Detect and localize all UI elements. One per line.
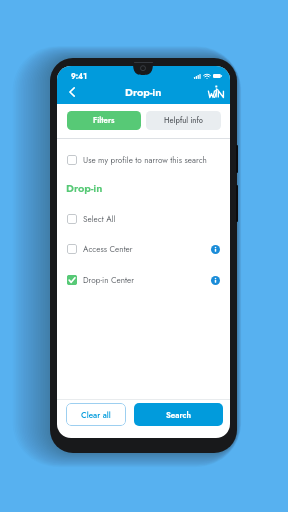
button[interactable]: Helpful info: [146, 111, 221, 130]
button[interactable]: More info: [209, 274, 221, 286]
staticText: Drop-in: [125, 84, 162, 98]
staticText: Helpful info: [164, 115, 203, 126]
button[interactable]: Use my profile to narrow this search: [67, 153, 221, 167]
staticText: Filters: [93, 115, 115, 126]
staticText: Use my profile to narrow this search: [83, 154, 207, 166]
staticText: Clear all: [81, 409, 111, 421]
button[interactable]: Search: [134, 403, 223, 426]
button[interactable]: Back: [62, 82, 82, 102]
button[interactable]: Drop-in Center: [67, 273, 221, 287]
staticText: Drop-in: [66, 180, 103, 196]
button[interactable]: Clear all: [66, 403, 126, 426]
button[interactable]: More info: [209, 243, 221, 255]
button[interactable]: Select All: [67, 212, 221, 226]
other: WIN logo: [208, 85, 224, 98]
staticText: Select All: [83, 213, 116, 225]
button[interactable]: Access Center: [67, 242, 221, 256]
staticText: Drop-in Center: [83, 274, 135, 286]
staticText: Search: [166, 409, 192, 421]
staticText: Access Center: [83, 243, 133, 255]
button[interactable]: Filters: [67, 111, 141, 130]
staticText: 9:41: [71, 71, 87, 81]
